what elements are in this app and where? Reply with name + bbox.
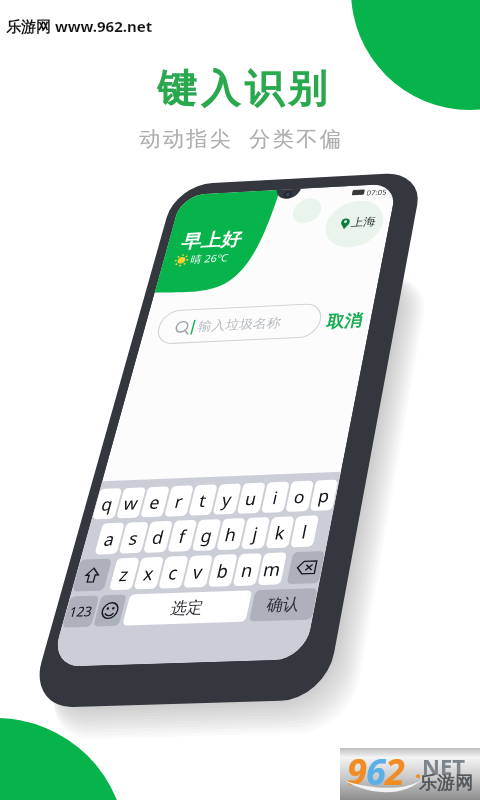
button[interactable] — [0, 0, 480, 800]
